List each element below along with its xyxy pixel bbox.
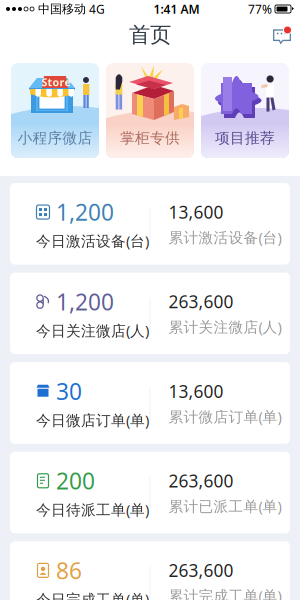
staticText: 累计微店订单(单) [168,407,281,426]
button[interactable]: 200 [10,452,290,533]
staticText: 累计关注微店(人) [168,317,281,337]
staticText: 200 [56,466,95,496]
staticText: 263,600 [168,559,233,582]
staticText: 小程序微店 [17,129,92,147]
staticText: 累计激活设备(台) [168,228,281,247]
staticText: 263,600 [168,469,233,492]
staticText: Store [41,75,70,89]
staticText: 86 [56,555,82,585]
button[interactable]: 项目推荐 [201,63,289,158]
staticText: 1,200 [56,287,114,317]
staticText: 77% [248,1,272,17]
button[interactable]: 1,200 [10,273,290,354]
staticText: 30 [56,376,82,406]
button[interactable]: 1,200 [10,183,290,265]
staticText: 1,200 [56,197,114,227]
staticText: 4G [89,1,105,17]
button[interactable]: Store [11,63,99,158]
staticText: 累计已派工单(单) [168,496,281,516]
staticText: 今日完成工单(单) [36,589,149,600]
staticText: 今日关注微店(人) [36,321,149,340]
button[interactable]: 86 [10,541,290,600]
staticText: 项目推荐 [215,129,275,147]
staticText: 13,600 [168,380,223,403]
button[interactable]: Messages [264,18,300,52]
staticText: 今日激活设备(台) [36,231,149,251]
staticText: 中国移动 [38,2,86,16]
button[interactable]: 30 [10,362,290,444]
staticText: 1:41 AM [153,1,199,17]
staticText: 今日待派工单(单) [36,500,149,519]
staticText: 首页 [129,22,171,48]
staticText: 掌柜专供 [120,129,180,147]
staticText: 今日微店订单(单) [36,410,149,430]
staticText: 累计完成工单(单) [168,586,281,600]
staticText: 263,600 [168,290,233,313]
staticText: 13,600 [168,200,223,223]
button[interactable]: 掌柜专供 [106,63,194,158]
